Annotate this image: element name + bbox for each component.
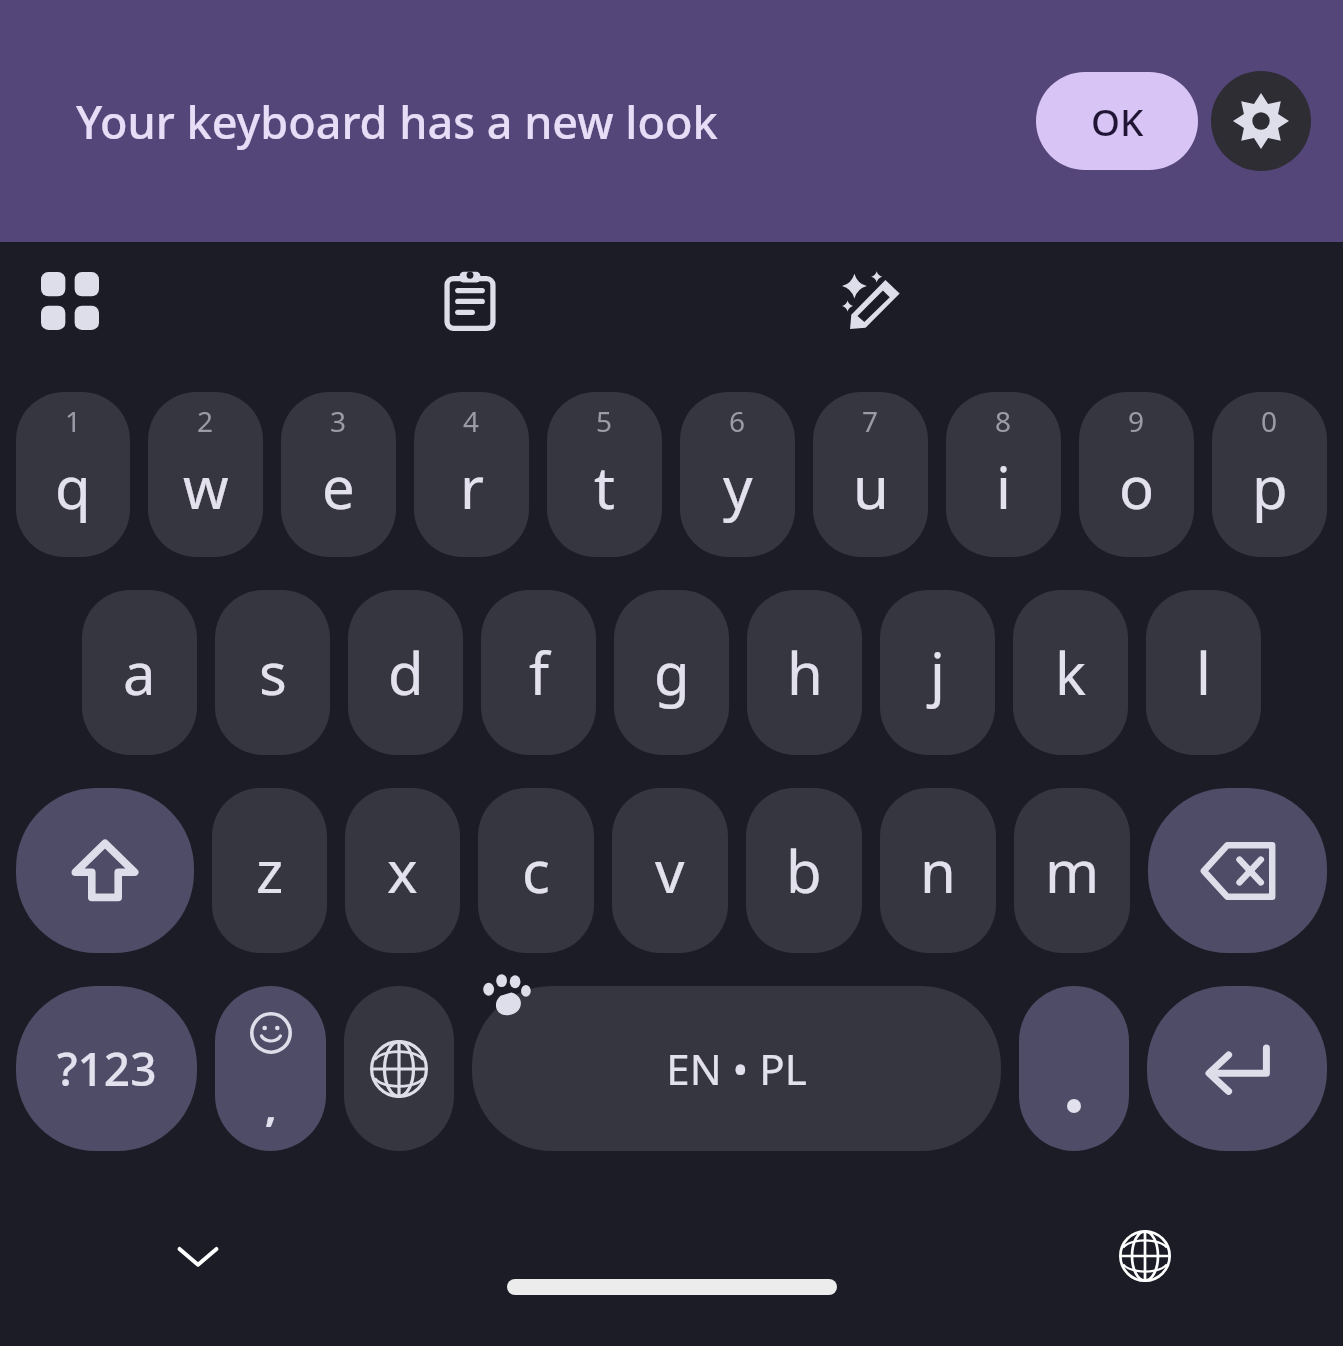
button[interactable]: m xyxy=(1014,788,1130,953)
button[interactable]: Backspace xyxy=(1148,788,1327,953)
staticText: 6 xyxy=(729,402,746,440)
button[interactable]: h xyxy=(747,590,862,755)
button[interactable]: f xyxy=(481,590,596,755)
button[interactable]: 7 xyxy=(813,392,928,557)
button[interactable]: 5 xyxy=(547,392,662,557)
staticText: Your keyboard has a new look xyxy=(76,91,718,152)
staticText: j xyxy=(930,633,945,712)
button[interactable]: Hide keyboard xyxy=(148,1206,248,1306)
staticText: , xyxy=(265,1079,277,1133)
staticText: e xyxy=(322,447,355,526)
staticText: 1 xyxy=(65,402,82,440)
button[interactable]: g xyxy=(614,590,729,755)
button[interactable]: 9 xyxy=(1079,392,1194,557)
staticText: 2 xyxy=(197,402,214,440)
staticText: EN • PL xyxy=(666,1040,807,1097)
button[interactable]: Change language xyxy=(1095,1206,1195,1306)
staticText: ?123 xyxy=(57,1037,157,1100)
staticText: x xyxy=(387,831,418,910)
button[interactable]: 6 xyxy=(680,392,795,557)
staticText: OK xyxy=(1091,96,1144,146)
staticText: c xyxy=(522,831,550,910)
staticText: s xyxy=(259,633,287,712)
staticText: 7 xyxy=(862,402,879,440)
button[interactable]: 8 xyxy=(946,392,1061,557)
button[interactable]: ?123 xyxy=(16,986,197,1151)
staticText: z xyxy=(256,831,284,910)
button[interactable]: 2 xyxy=(148,392,263,557)
button[interactable]: s xyxy=(215,590,330,755)
staticText: 4 xyxy=(463,402,480,440)
staticText: 0 xyxy=(1261,402,1278,440)
staticText: y xyxy=(723,447,753,526)
button[interactable]: Change language xyxy=(344,986,454,1151)
staticText: 9 xyxy=(1128,402,1145,440)
staticText: 5 xyxy=(596,402,613,440)
button[interactable]: Keyboard modes xyxy=(18,249,122,353)
button[interactable]: Emoji xyxy=(215,986,326,1151)
staticText: b xyxy=(786,831,822,910)
staticText: d xyxy=(388,633,424,712)
staticText: v xyxy=(655,831,685,910)
staticText: n xyxy=(920,831,956,910)
staticText: u xyxy=(853,447,889,526)
button[interactable]: v xyxy=(612,788,728,953)
staticText: p xyxy=(1252,447,1288,526)
button[interactable]: OK xyxy=(1036,72,1198,170)
staticText: k xyxy=(1055,633,1086,712)
button[interactable]: z xyxy=(212,788,327,953)
button[interactable] xyxy=(1019,986,1129,1151)
button[interactable]: n xyxy=(880,788,996,953)
staticText: 3 xyxy=(330,402,347,440)
button[interactable]: 0 xyxy=(1212,392,1327,557)
button[interactable]: Shift xyxy=(16,788,194,953)
staticText: t xyxy=(594,447,615,526)
button[interactable]: d xyxy=(348,590,463,755)
button[interactable]: Settings xyxy=(1211,71,1311,171)
staticText: f xyxy=(529,633,549,712)
staticText: a xyxy=(123,633,156,712)
button[interactable]: EN • PL xyxy=(472,986,1001,1151)
button[interactable]: j xyxy=(880,590,995,755)
button[interactable]: 3 xyxy=(281,392,396,557)
button[interactable]: l xyxy=(1146,590,1261,755)
button[interactable]: 4 xyxy=(414,392,529,557)
staticText: g xyxy=(654,633,690,712)
button[interactable]: x xyxy=(345,788,460,953)
button[interactable]: Clipboard xyxy=(418,249,522,353)
button[interactable]: c xyxy=(478,788,594,953)
staticText: w xyxy=(183,447,229,526)
button[interactable]: b xyxy=(746,788,862,953)
staticText: l xyxy=(1196,633,1211,712)
staticText: 8 xyxy=(995,402,1012,440)
staticText: m xyxy=(1045,831,1100,910)
staticText: o xyxy=(1119,447,1155,526)
button[interactable]: Enter xyxy=(1147,986,1327,1151)
staticText: i xyxy=(996,447,1011,526)
staticText: r xyxy=(460,447,484,526)
button[interactable]: Write with AI xyxy=(821,249,925,353)
button[interactable]: k xyxy=(1013,590,1128,755)
button[interactable]: a xyxy=(82,590,197,755)
button[interactable]: 1 xyxy=(16,392,130,557)
staticText: h xyxy=(787,633,823,712)
staticText: q xyxy=(55,447,91,526)
